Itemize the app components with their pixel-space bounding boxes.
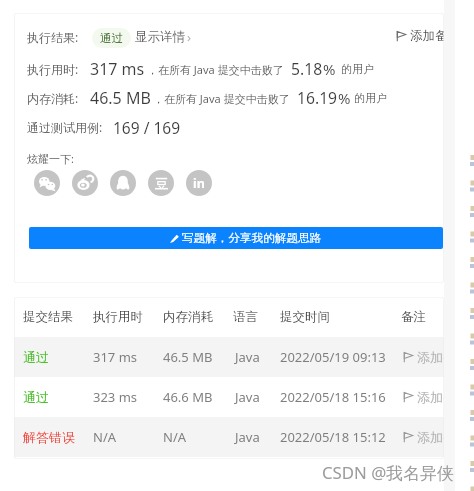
- staticText: 323 ms: [93, 388, 138, 406]
- button[interactable]: 写题解，分享我的解题思路: [29, 227, 443, 249]
- button[interactable]: 添加备注: [396, 28, 444, 44]
- staticText: N/A: [163, 428, 187, 446]
- staticText: 46.6 MB: [163, 388, 213, 406]
- button[interactable]: 豆瓣: [148, 170, 174, 196]
- staticText: 解答错误: [23, 429, 75, 445]
- button[interactable]: 添加备注: [403, 349, 444, 365]
- staticText: 2022/05/19 09:13: [280, 348, 386, 366]
- staticText: 显示详情: [135, 29, 185, 45]
- staticText: 添加备注: [410, 28, 444, 44]
- staticText: ，在所有 Java 提交中击败了: [147, 62, 284, 77]
- staticText: 添加备注: [417, 429, 444, 445]
- staticText: 5.18: [291, 58, 323, 79]
- staticText: Java: [235, 388, 260, 406]
- staticText: 317 ms: [90, 58, 145, 80]
- button[interactable]: 添加备注: [403, 389, 444, 405]
- staticText: 2022/05/18 15:12: [280, 428, 386, 446]
- staticText: 执行结果:: [27, 29, 79, 45]
- staticText: 通过: [100, 31, 123, 45]
- staticText: CSDN @我名异侠: [322, 461, 454, 484]
- staticText: N/A: [93, 428, 117, 446]
- staticText: Java: [235, 428, 260, 446]
- staticText: in: [193, 175, 205, 192]
- button[interactable]: 显示详情: [135, 28, 192, 46]
- button[interactable]: 通过: [92, 28, 131, 48]
- staticText: 添加备注: [417, 349, 444, 365]
- button[interactable]: LinkedIn: [186, 170, 212, 196]
- staticText: 169 / 169: [113, 117, 181, 138]
- staticText: 46.5 MB: [90, 87, 151, 109]
- staticText: 添加备注: [417, 389, 444, 405]
- staticText: ›: [187, 28, 192, 46]
- staticText: Java: [235, 348, 260, 366]
- staticText: 提交结果: [23, 309, 73, 325]
- button[interactable]: 通过: [14, 377, 444, 417]
- staticText: ，在所有 Java 提交中击败了: [153, 91, 290, 106]
- staticText: 的用户: [354, 91, 387, 105]
- staticText: 提交时间: [280, 309, 330, 325]
- staticText: 炫耀一下:: [27, 151, 74, 166]
- button[interactable]: 解答错误: [14, 417, 444, 457]
- staticText: 执行用时: [93, 309, 143, 325]
- button[interactable]: 添加备注: [403, 429, 444, 445]
- staticText: 317 ms: [93, 348, 138, 366]
- staticText: 执行用时:: [27, 61, 79, 77]
- button[interactable]: 微信: [34, 170, 60, 196]
- staticText: 写题解，分享我的解题思路: [182, 231, 322, 246]
- staticText: %: [338, 88, 351, 108]
- staticText: 语言: [233, 309, 258, 325]
- button[interactable]: QQ: [110, 170, 136, 196]
- staticText: 通过: [23, 349, 49, 365]
- staticText: 2022/05/18 15:16: [280, 388, 386, 406]
- staticText: 通过测试用例:: [27, 119, 103, 135]
- staticText: 16.19: [297, 87, 338, 108]
- staticText: %: [323, 59, 336, 79]
- staticText: 通过: [23, 389, 49, 405]
- staticText: 的用户: [341, 62, 374, 76]
- staticText: 内存消耗: [163, 309, 213, 325]
- staticText: 内存消耗:: [27, 90, 79, 106]
- button[interactable]: 通过: [14, 337, 444, 377]
- staticText: 备注: [401, 309, 426, 325]
- button[interactable]: 微博: [72, 170, 98, 196]
- staticText: 46.5 MB: [163, 348, 213, 366]
